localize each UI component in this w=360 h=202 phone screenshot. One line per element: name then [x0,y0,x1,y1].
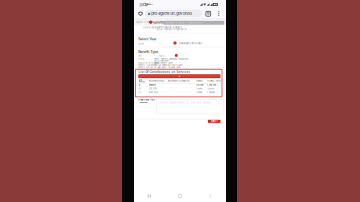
staticText: Benefit Period [138,66,152,69]
staticText: Benefit Month Year [149,80,165,82]
staticText: MAR 2024 [149,91,158,94]
staticText: Paid Amt [196,80,203,82]
staticText: Partial Pension Certificate [154,64,182,66]
staticText: 1,240.000 [207,84,216,86]
staticText: Certificate of Gratuity - Social Insuran… [165,22,202,24]
staticText: Paid - Benefit payment completed [154,58,188,60]
staticText: List Of Contributions on Services [138,70,190,74]
staticText: 120.000 [196,84,203,86]
staticText: prd-agsew.uic.gov.bh/ss [151,11,192,16]
staticText: 120.000 [196,91,202,94]
staticText: 10 [207,12,210,15]
staticText: 1,480.000 [207,91,215,94]
button[interactable]: More options [215,9,222,18]
staticText: 1203 [159,54,164,57]
staticText: on 12 Feb 2024 [154,60,168,62]
staticText: Kingdom of Bahrain [136,21,153,23]
staticText: Action [216,80,221,82]
staticText: FEB 2024 [149,88,157,90]
staticText: Download Certificate [179,42,202,45]
staticText: A 3 c 9 12 0 1 1 9 0 1 | 7 8 9 0 2 0 0 0 [160,101,210,104]
button[interactable]: Home [165,190,195,202]
staticText: 01 Jan 2024 - 31 Mar 2024 [154,66,180,69]
staticText: 20:19 [139,3,147,7]
staticText: Total Amt [207,80,215,82]
button[interactable]: SUBMIT [208,120,220,123]
staticText: Select Year [138,37,156,41]
button[interactable]: Open tabs [204,9,212,18]
staticText: 120.000 [196,88,202,90]
staticText: Number [138,81,145,83]
staticText: 2024 [138,42,144,45]
staticText: Additional Info [138,98,154,101]
staticText: Status [138,58,144,60]
staticText: Benefit Type [138,50,158,54]
staticText: S/N [138,79,141,81]
staticText: 1,360.000 [207,88,214,90]
staticText: All [138,54,142,57]
staticText: eplatform [153,21,168,24]
staticText: Benefit Category [138,64,155,66]
staticText: Certificate of Gratuity [156,26,181,29]
staticText: — [159,42,161,45]
staticText: Social Insurance Organisation [156,28,186,31]
staticText: Registration Number [138,62,159,64]
staticText: 880112-0042 / 2024 [154,62,172,64]
button[interactable]: Site information [136,9,145,18]
staticText: 01 [138,84,140,86]
staticText: 02 [138,88,140,90]
staticText: JAN 2024 [149,84,156,86]
button[interactable]: Recent apps [134,190,165,202]
staticText: Service details [143,26,159,29]
staticText: 03 [138,91,140,94]
button[interactable]: prd-agsew.uic.gov.bh/ss [145,10,202,17]
staticText: Benefit Reference Number [168,80,190,82]
staticText: SUBMIT [211,120,218,122]
